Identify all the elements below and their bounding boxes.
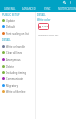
button[interactable]: NOTIFICATION bbox=[57, 7, 76, 11]
staticText: Minimum color set bbox=[38, 34, 59, 37]
staticText: Clear all lines bbox=[6, 51, 23, 55]
button[interactable]: Migratory bbox=[0, 82, 35, 89]
staticText: Write color bbox=[37, 18, 51, 22]
button[interactable]: Clear all lines bbox=[0, 49, 35, 56]
button[interactable]: Anonymous bbox=[0, 56, 35, 63]
staticText: Write a filterline bbox=[6, 90, 26, 94]
staticText: SYNC bbox=[44, 7, 51, 11]
button[interactable]: Font scaling on list bbox=[0, 30, 35, 37]
staticText: Font scaling on list bbox=[6, 32, 29, 36]
button[interactable]: More options bbox=[69, 1, 72, 4]
staticText: Communicate bbox=[6, 77, 24, 81]
staticText: NOTIFICATION bbox=[58, 7, 76, 11]
button[interactable]: Update bbox=[0, 17, 35, 24]
staticText: Migratory bbox=[6, 84, 18, 88]
button[interactable]: Search bbox=[63, 1, 66, 4]
button[interactable]: Write color bbox=[37, 18, 51, 22]
button[interactable]: Write or handle bbox=[0, 43, 35, 50]
button[interactable]: E-mail bbox=[38, 23, 49, 30]
staticText: Write or handle bbox=[6, 45, 25, 49]
button[interactable]: Write a filterline bbox=[0, 88, 35, 95]
staticText: Including timing bbox=[6, 71, 27, 75]
staticText: GENERAL bbox=[4, 7, 16, 11]
button[interactable]: SYNC bbox=[38, 7, 57, 11]
button[interactable]: Communicate bbox=[0, 75, 35, 82]
button[interactable]: Delete bbox=[0, 63, 35, 70]
staticText: Delete bbox=[6, 65, 14, 69]
staticText: Anonymous bbox=[6, 58, 21, 62]
staticText: DETAIL bbox=[2, 38, 11, 42]
staticText: DETAIL bbox=[37, 13, 46, 17]
staticText: E-mail bbox=[42, 25, 49, 28]
staticText: Update bbox=[6, 19, 15, 23]
button[interactable]: ADVANCED bbox=[19, 7, 38, 11]
button[interactable]: GENERAL bbox=[0, 7, 19, 11]
button[interactable]: Including timing bbox=[0, 69, 35, 76]
button[interactable]: Default bbox=[0, 23, 35, 30]
staticText: ADVANCED bbox=[22, 7, 36, 11]
staticText: PUBLIC SETUP bbox=[2, 13, 20, 17]
staticText: Default bbox=[6, 25, 15, 29]
